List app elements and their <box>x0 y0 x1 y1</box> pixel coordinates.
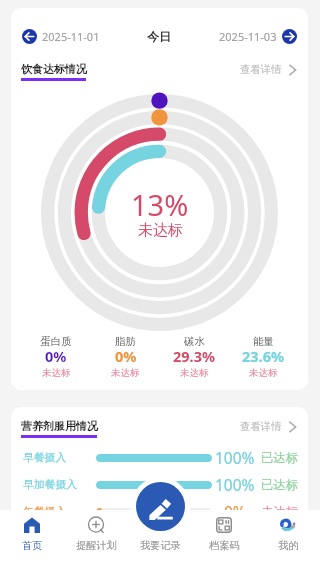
button[interactable]: 档案码 <box>192 510 256 568</box>
button[interactable]: 早餐摄入 <box>11 444 308 471</box>
staticText: 今日 <box>147 29 171 44</box>
staticText: 未达标 <box>138 221 183 240</box>
button[interactable]: 上一天 <box>20 25 102 48</box>
staticText: 首页 <box>22 539 43 552</box>
staticText: 0% <box>45 346 67 366</box>
staticText: 早加餐摄入 <box>23 478 77 492</box>
staticText: 早餐摄入 <box>23 451 67 465</box>
staticText: 2025-11-01 <box>42 29 100 44</box>
staticText: 未达标 <box>261 504 298 519</box>
button[interactable]: 脂肪 <box>91 335 160 380</box>
button[interactable]: 早加餐摄入 <box>11 471 308 498</box>
staticText: 脂肪 <box>115 335 136 348</box>
staticText: 100% <box>215 447 255 468</box>
staticText: 未达标 <box>249 367 278 379</box>
staticText: 未达标 <box>261 531 298 546</box>
staticText: 0% <box>224 501 246 522</box>
staticText: 13% <box>131 185 189 224</box>
staticText: 未达标 <box>180 367 209 379</box>
staticText: 我要记录 <box>140 539 181 552</box>
staticText: 查看详情 <box>240 63 282 76</box>
staticText: 蛋白质 <box>40 335 72 348</box>
button[interactable]: 碳水 <box>160 335 229 380</box>
button[interactable]: 我要记录 <box>136 482 185 531</box>
button[interactable]: 我的 <box>256 510 320 568</box>
staticText: 23.6% <box>242 346 285 366</box>
staticText: 午加餐摄入 <box>23 532 77 546</box>
staticText: 我的 <box>278 539 299 552</box>
staticText: 0% <box>224 528 246 549</box>
staticText: 29.3% <box>173 346 216 366</box>
staticText: 碳水 <box>184 335 205 348</box>
button[interactable]: 提醒计划 <box>64 510 128 568</box>
other: 上一天 <box>22 29 37 44</box>
staticText: 已达标 <box>261 477 298 492</box>
staticText: 100% <box>215 474 255 495</box>
staticText: 已达标 <box>261 450 298 465</box>
staticText: 2025-11-03 <box>219 29 277 44</box>
button[interactable]: 查看详情 <box>240 419 297 433</box>
staticText: 查看详情 <box>240 420 282 433</box>
staticText: 午餐摄入 <box>23 505 67 519</box>
staticText: 0% <box>115 346 137 366</box>
button[interactable]: 2025-11-03 <box>217 25 299 48</box>
staticText: 能量 <box>253 335 274 348</box>
staticText: 未达标 <box>111 367 140 379</box>
button[interactable]: 午加餐摄入 <box>11 525 308 552</box>
staticText: 档案码 <box>209 539 240 552</box>
button[interactable]: 查看详情 <box>240 62 297 76</box>
button[interactable]: 午餐摄入 <box>11 498 308 525</box>
button[interactable]: 蛋白质 <box>21 335 91 380</box>
button[interactable]: 能量 <box>229 335 298 380</box>
button[interactable]: 我要记录 <box>128 510 192 568</box>
other: 下一天 <box>282 29 297 44</box>
staticText: 提醒计划 <box>76 539 117 552</box>
staticText: 未达标 <box>42 367 71 379</box>
button[interactable]: 首页 <box>0 510 64 568</box>
staticText: 营养剂服用情况 <box>21 419 98 433</box>
staticText: 饮食达标情况 <box>21 62 87 76</box>
